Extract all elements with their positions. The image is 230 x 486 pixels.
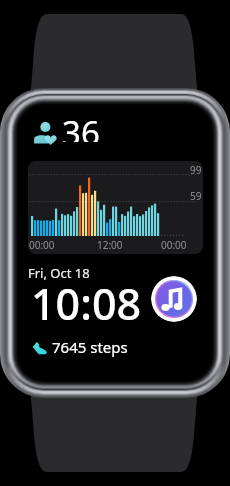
staticText: 10:08 xyxy=(31,274,142,333)
button[interactable]: 99 xyxy=(28,161,203,254)
staticText: 00:00 xyxy=(161,238,187,252)
button[interactable]: Music xyxy=(151,276,197,322)
staticText: 36 xyxy=(62,110,100,142)
button[interactable]: 7645 steps xyxy=(32,337,128,357)
button[interactable]: 36 xyxy=(32,118,102,150)
staticText: 99 xyxy=(190,163,202,177)
staticText: 59 xyxy=(190,189,202,203)
staticText: 7645 steps xyxy=(52,337,128,357)
staticText: 12:00 xyxy=(97,238,123,252)
staticText: Fri, Oct 18 xyxy=(28,264,90,282)
staticText: 00:00 xyxy=(29,238,55,252)
